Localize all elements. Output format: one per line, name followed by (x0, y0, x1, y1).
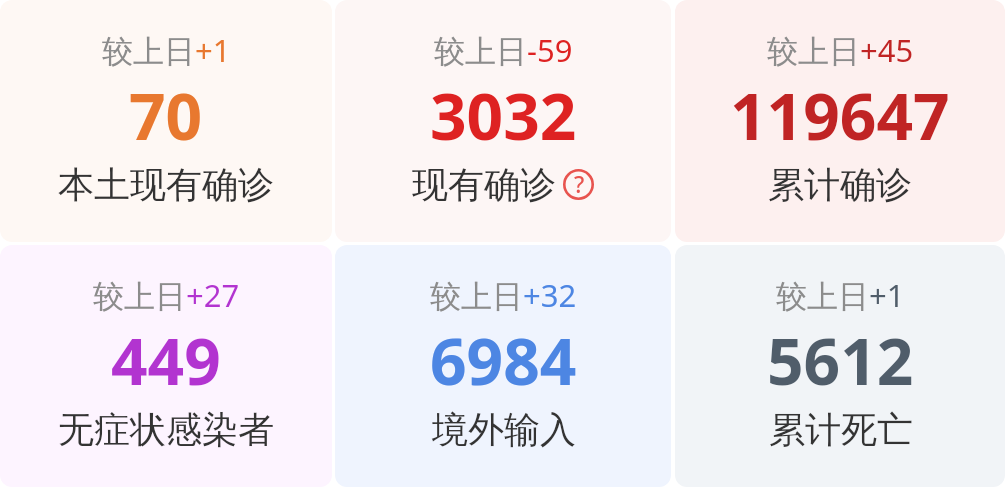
staticText: 较上日-59 (434, 29, 573, 71)
staticText: 无症状感染者 (58, 407, 274, 452)
button[interactable]: 现有确诊说明 (563, 169, 594, 200)
button[interactable]: 较上日-59 (335, 0, 671, 242)
staticText: 较上日+1 (776, 274, 905, 316)
staticText: 较上日+45 (767, 29, 914, 71)
button[interactable]: 较上日+1 (0, 0, 332, 242)
staticText: 较上日+27 (93, 274, 240, 316)
staticText: 较上日+1 (102, 29, 231, 71)
staticText: 5612 (767, 317, 914, 404)
staticText: ? (574, 168, 585, 199)
button[interactable]: 较上日+32 (335, 245, 671, 487)
staticText: 累计确诊 (768, 162, 912, 207)
button[interactable]: 较上日+45 (675, 0, 1005, 242)
button[interactable]: 较上日+1 (675, 245, 1005, 487)
staticText: 3032 (430, 72, 577, 159)
staticText: 现有确诊 (412, 162, 556, 207)
button[interactable]: 较上日+27 (0, 245, 332, 487)
staticText: 449 (111, 317, 221, 404)
staticText: 境外输入 (432, 407, 576, 452)
staticText: 本土现有确诊 (58, 162, 274, 207)
staticText: 6984 (430, 317, 577, 404)
staticText: 较上日+32 (430, 274, 577, 316)
staticText: 70 (129, 72, 203, 159)
staticText: 119647 (730, 72, 950, 159)
staticText: 累计死亡 (769, 407, 913, 452)
